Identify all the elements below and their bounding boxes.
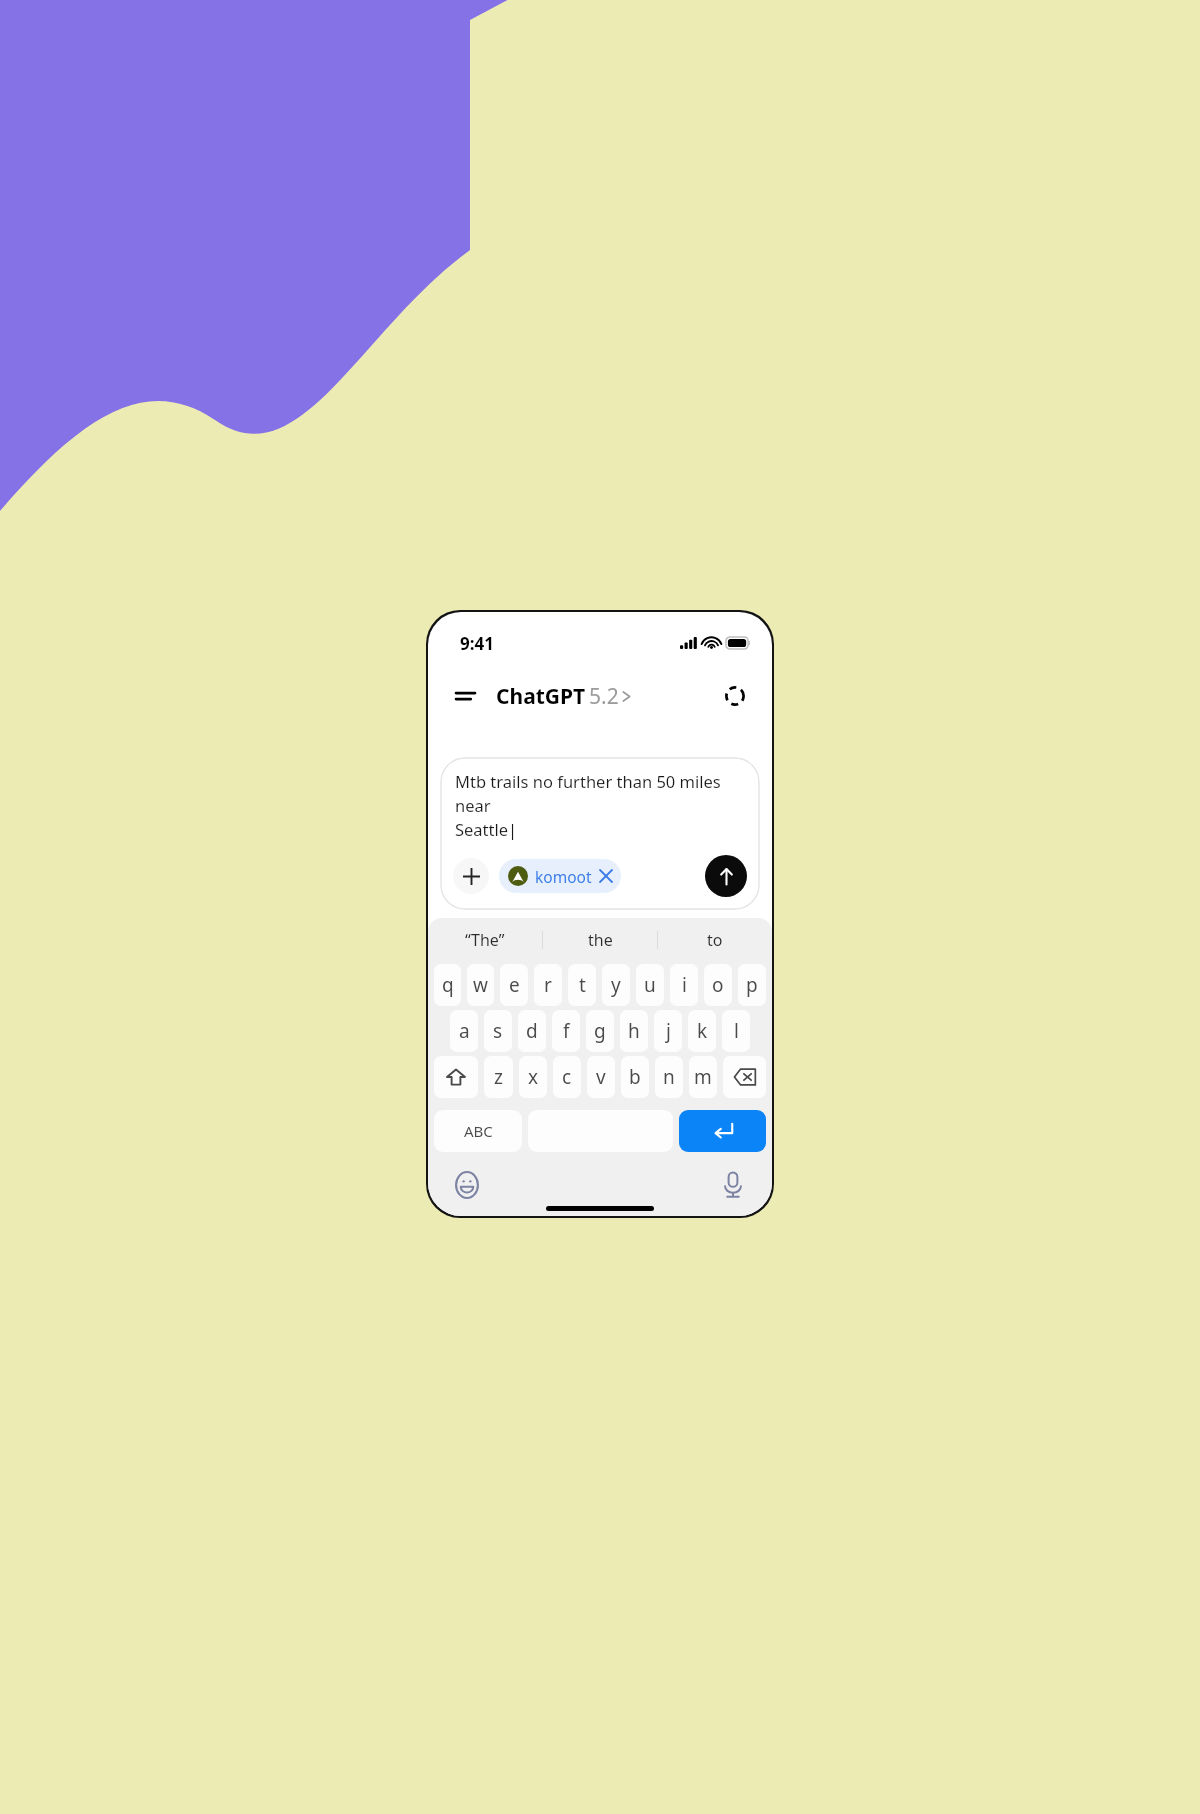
button[interactable]: komoot	[499, 859, 621, 893]
staticText: o	[712, 972, 724, 998]
staticText: the	[588, 929, 613, 951]
button[interactable]: u	[636, 964, 664, 1006]
button[interactable]: Add attachment	[453, 858, 489, 894]
button[interactable]: Voice input	[716, 1168, 750, 1202]
staticText: j	[666, 1018, 671, 1044]
staticText: v	[596, 1064, 606, 1090]
staticText: s	[493, 1018, 503, 1044]
button[interactable]: q	[434, 964, 461, 1006]
button[interactable]: i	[670, 964, 698, 1006]
staticText: e	[509, 972, 520, 998]
staticText: m	[694, 1064, 712, 1090]
staticText: ChatGPT	[496, 682, 586, 711]
button[interactable]: g	[586, 1010, 614, 1052]
button[interactable]: Send	[705, 855, 747, 897]
button[interactable]: t	[568, 964, 596, 1006]
button[interactable]: v	[587, 1056, 615, 1098]
button[interactable]: k	[688, 1010, 716, 1052]
button[interactable]: f	[552, 1010, 580, 1052]
staticText: Mtb trails no further than 50 miles near…	[455, 770, 745, 841]
button[interactable]: l	[722, 1010, 750, 1052]
staticText: a	[459, 1018, 470, 1044]
staticText: f	[563, 1018, 570, 1044]
button[interactable]: c	[553, 1056, 581, 1098]
button[interactable]: w	[467, 964, 494, 1006]
staticText: x	[528, 1064, 539, 1090]
staticText: d	[526, 1018, 538, 1044]
staticText: b	[629, 1064, 641, 1090]
button[interactable]: x	[519, 1056, 547, 1098]
staticText: z	[494, 1064, 503, 1090]
staticText: c	[562, 1064, 572, 1090]
button[interactable]: s	[484, 1010, 512, 1052]
button[interactable]: “The”	[428, 918, 542, 962]
staticText: g	[594, 1018, 606, 1044]
button[interactable]: n	[655, 1056, 683, 1098]
button[interactable]: o	[704, 964, 732, 1006]
button[interactable]: y	[602, 964, 630, 1006]
staticText: y	[611, 972, 621, 998]
button[interactable]: the	[543, 918, 657, 962]
button[interactable]	[434, 1056, 478, 1098]
button[interactable]: Enter	[679, 1110, 766, 1152]
button[interactable]: a	[450, 1010, 478, 1052]
button[interactable]	[723, 1056, 766, 1098]
staticText: komoot	[535, 866, 592, 887]
staticText: p	[746, 972, 758, 998]
staticText: n	[663, 1064, 675, 1090]
button[interactable]: to	[658, 918, 772, 962]
button[interactable]: j	[654, 1010, 682, 1052]
button[interactable]: Menu	[448, 679, 482, 713]
button[interactable]: Emoji	[450, 1168, 484, 1202]
button[interactable]: m	[689, 1056, 717, 1098]
staticText: i	[682, 972, 687, 998]
button[interactable]: r	[534, 964, 562, 1006]
staticText: ABC	[464, 1121, 493, 1141]
staticText: 9:41	[460, 632, 494, 655]
button[interactable]: h	[620, 1010, 648, 1052]
button[interactable]: z	[484, 1056, 513, 1098]
button[interactable]: b	[621, 1056, 649, 1098]
staticText: “The”	[465, 929, 505, 951]
staticText: l	[734, 1018, 739, 1044]
staticText: u	[644, 972, 656, 998]
button[interactable]: ABC	[434, 1110, 522, 1152]
staticText: q	[442, 972, 454, 998]
staticText: w	[473, 972, 488, 998]
staticText: h	[628, 1018, 640, 1044]
staticText: t	[579, 972, 586, 998]
button[interactable]: ChatGPT	[496, 682, 631, 711]
staticText: r	[544, 972, 552, 998]
button[interactable]: New chat	[718, 679, 752, 713]
button[interactable]: e	[500, 964, 528, 1006]
button[interactable]: d	[518, 1010, 546, 1052]
staticText: k	[697, 1018, 708, 1044]
button[interactable]: p	[738, 964, 766, 1006]
staticText: to	[707, 929, 723, 951]
staticText: 5.2	[589, 682, 619, 711]
